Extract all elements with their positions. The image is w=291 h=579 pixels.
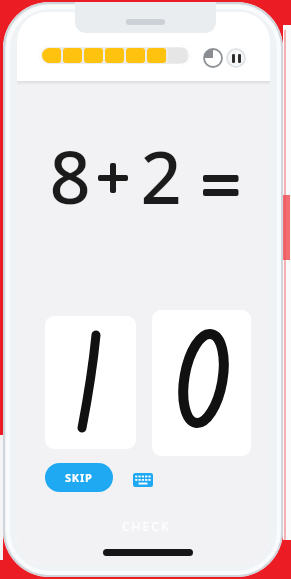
button[interactable] (203, 48, 223, 68)
button[interactable] (152, 310, 251, 456)
staticText: 8 (49, 127, 91, 207)
button[interactable] (226, 48, 246, 68)
staticText: SKIP (65, 470, 93, 485)
button[interactable] (45, 316, 136, 449)
staticText: 2 (140, 127, 182, 207)
button[interactable] (129, 469, 157, 491)
button[interactable]: SKIP (45, 463, 113, 492)
staticText: CHECK (122, 518, 171, 534)
